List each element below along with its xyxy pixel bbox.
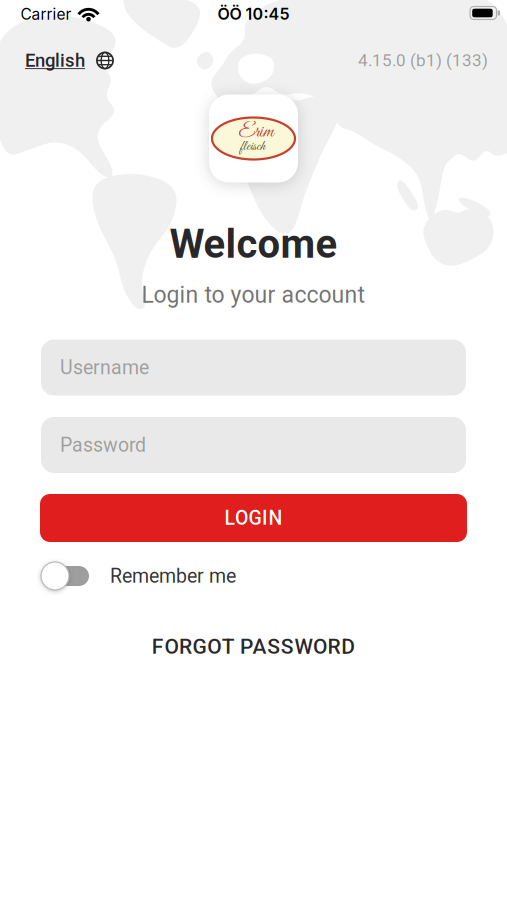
staticText: FORGOT PASSWORD xyxy=(152,634,355,659)
staticText: Login to your account xyxy=(141,281,365,308)
staticText: Welcome xyxy=(169,221,337,267)
staticText: English xyxy=(25,50,85,71)
button[interactable]: LOGIN xyxy=(40,494,467,542)
staticText: Username xyxy=(60,356,149,379)
staticText: ÖÖ 10:45 xyxy=(217,4,289,24)
staticText: Password xyxy=(60,434,146,456)
button[interactable]: Username xyxy=(41,339,466,395)
staticText: fleisch xyxy=(240,138,265,155)
button[interactable]: Remember me xyxy=(41,562,89,590)
staticText: LOGIN xyxy=(225,507,282,529)
staticText: Remember me xyxy=(110,565,236,587)
button[interactable]: FORGOT PASSWORD xyxy=(152,634,355,659)
button[interactable]: Password xyxy=(41,417,466,473)
staticText: 4.15.0 (b1) (133) xyxy=(358,50,488,70)
staticText: Erim xyxy=(238,119,273,144)
staticText: Carrier xyxy=(20,5,71,23)
button[interactable]: Change language xyxy=(25,50,114,71)
